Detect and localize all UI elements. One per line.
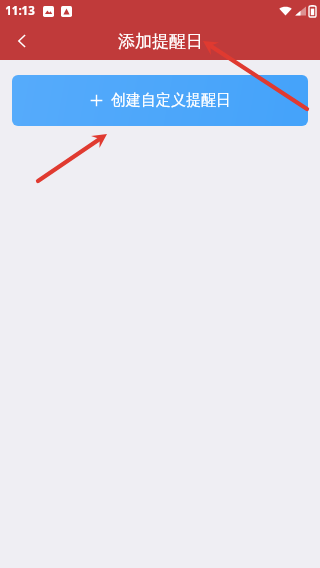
staticText: 创建自定义提醒日	[111, 91, 231, 110]
staticText: 添加提醒日	[118, 31, 203, 52]
button[interactable]: 创建自定义提醒日	[12, 75, 308, 126]
button[interactable]: Back	[0, 22, 44, 60]
staticText: 11:13	[5, 3, 35, 19]
